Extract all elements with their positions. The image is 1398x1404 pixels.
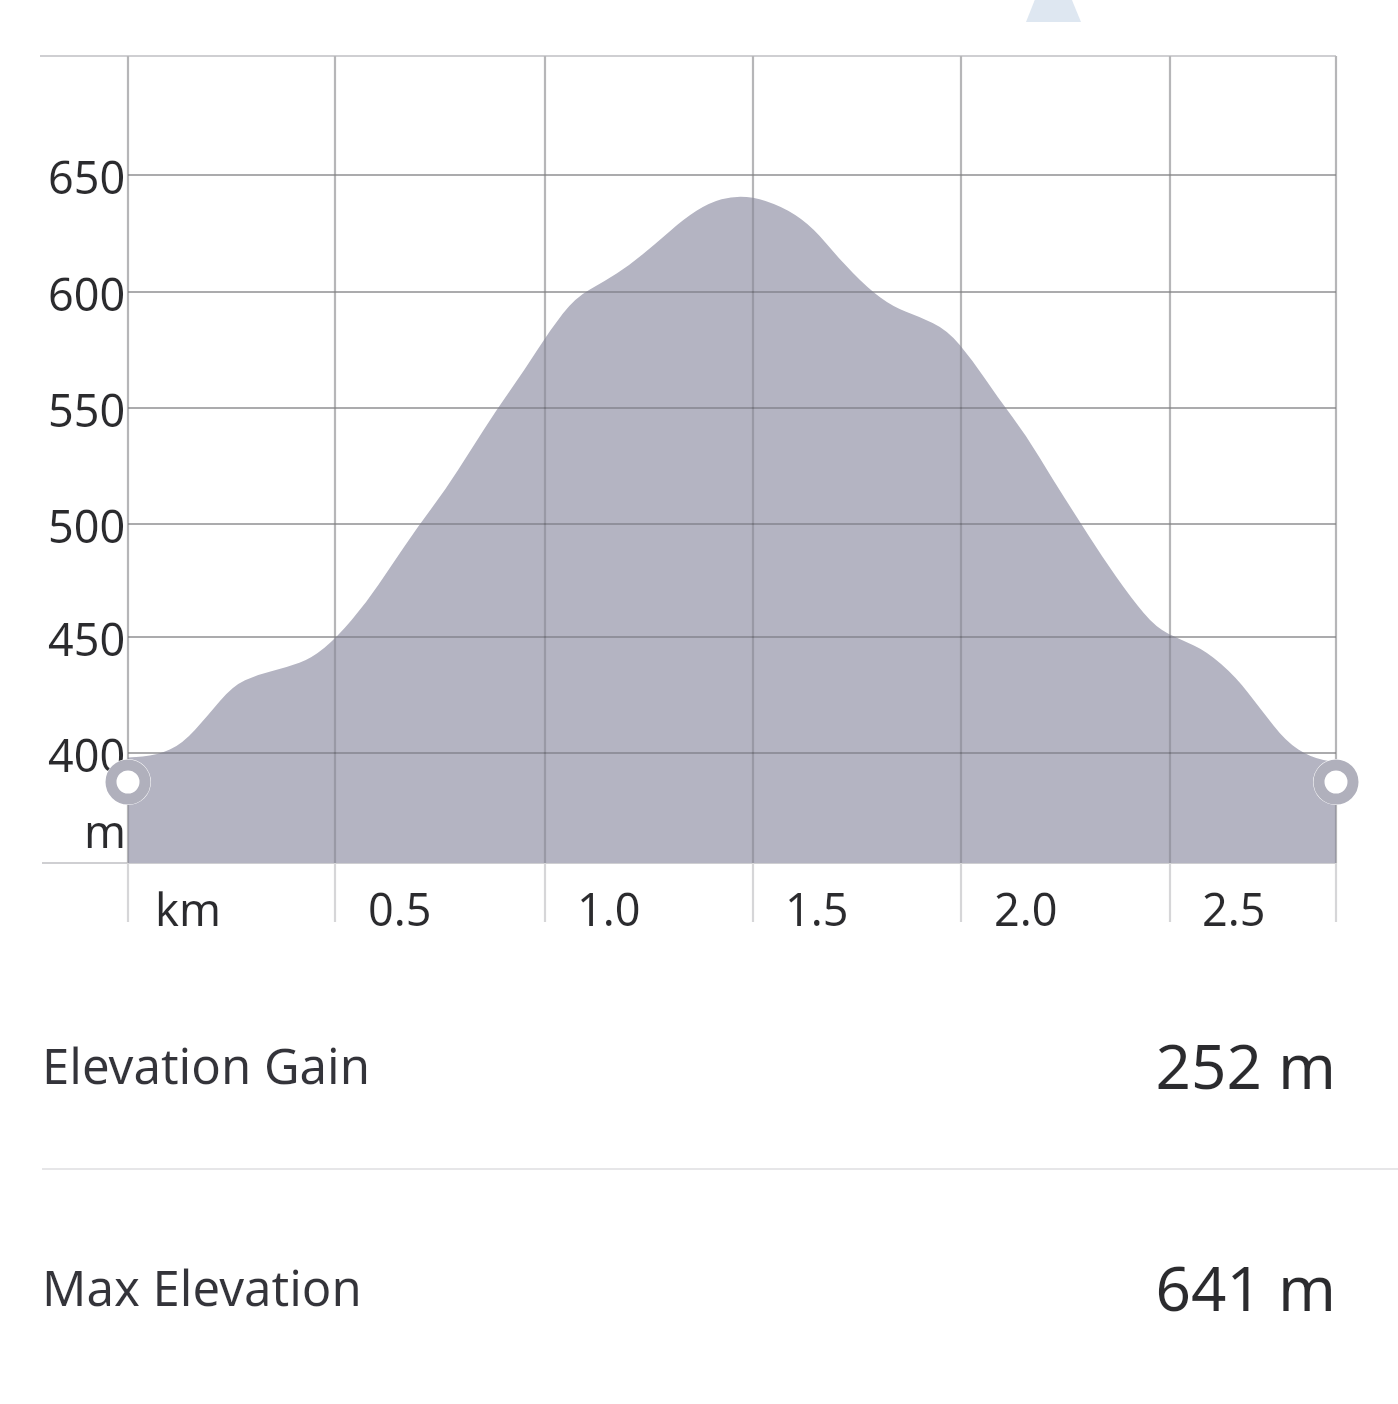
staticText: 1.5	[785, 878, 849, 939]
staticText: 550	[48, 379, 126, 440]
staticText: m	[84, 800, 127, 861]
button[interactable]: Elevation Gain	[0, 962, 1398, 1168]
staticText: km	[155, 878, 222, 939]
staticText: Elevation Gain	[42, 1032, 371, 1099]
staticText: 641 m	[1155, 1245, 1336, 1329]
button[interactable]: Max Elevation	[0, 1170, 1398, 1404]
staticText: 0.5	[368, 878, 432, 939]
staticText: Max Elevation	[42, 1254, 362, 1321]
staticText: 1.0	[577, 878, 641, 939]
staticText: 2.5	[1202, 878, 1266, 939]
staticText: 400	[48, 724, 126, 785]
staticText: 252 m	[1155, 1023, 1336, 1107]
staticText: 450	[48, 608, 126, 669]
staticText: 600	[48, 263, 126, 324]
staticText: 650	[48, 146, 126, 207]
staticText: 500	[48, 495, 126, 556]
staticText: 2.0	[994, 878, 1058, 939]
